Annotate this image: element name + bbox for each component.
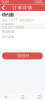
staticText: 9:41 [2, 0, 9, 5]
button[interactable]: Home [18, 94, 27, 100]
staticText: 请在 14:59 内完成支付 [2, 18, 34, 22]
staticText: 订单详情 [12, 5, 32, 11]
staticText: 100% [34, 0, 43, 4]
staticText: 订单编号 20240115009 [2, 22, 24, 30]
button[interactable]: Back [0, 4, 7, 11]
staticText: 待付款 [2, 12, 14, 18]
button[interactable]: 立即支付 [2, 52, 43, 59]
button[interactable]: Back [1, 94, 10, 100]
staticText: 合计金额 [2, 35, 14, 39]
staticText: 立即支付 [16, 54, 28, 58]
staticText: 商品信息 [2, 30, 14, 33]
button[interactable]: Recent apps [35, 94, 44, 100]
